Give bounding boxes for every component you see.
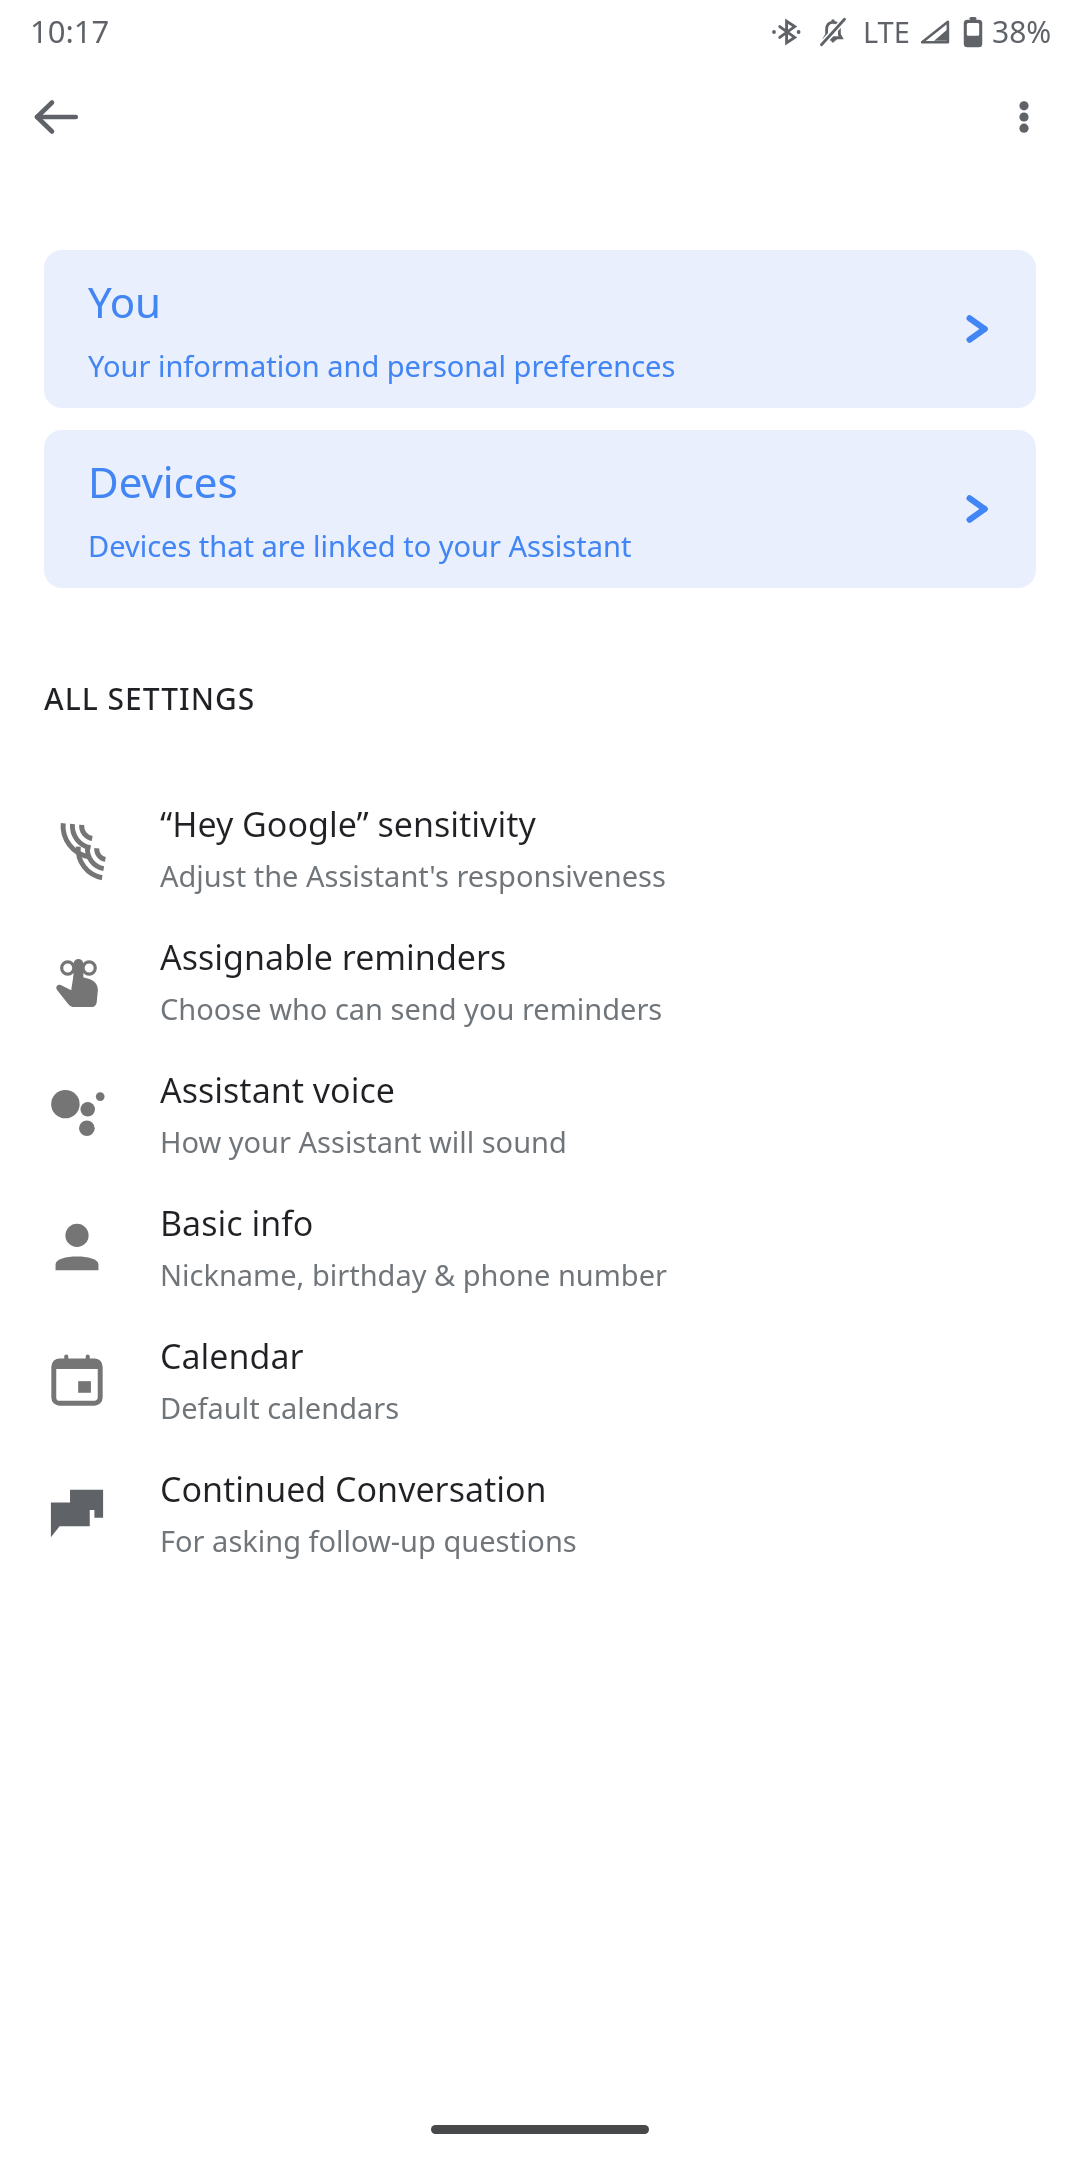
- staticText: For asking follow-up questions: [160, 1521, 577, 1560]
- staticText: Devices that are linked to your Assistan…: [88, 526, 632, 565]
- staticText: You: [88, 273, 162, 330]
- button[interactable]: Continued Conversation: [0, 1446, 1080, 1579]
- button[interactable]: Assignable reminders: [0, 914, 1080, 1047]
- button[interactable]: Assistant voice: [0, 1047, 1080, 1180]
- button[interactable]: “Hey Google” sensitivity: [0, 781, 1080, 914]
- staticText: Assistant voice: [160, 1067, 395, 1113]
- button[interactable]: Devices: [44, 430, 1036, 588]
- button[interactable]: Back: [18, 79, 94, 155]
- staticText: Adjust the Assistant's responsiveness: [160, 856, 666, 895]
- staticText: Devices: [88, 453, 238, 510]
- staticText: Nickname, birthday & phone number: [160, 1255, 668, 1294]
- staticText: Assignable reminders: [160, 934, 507, 980]
- staticText: ALL SETTINGS: [44, 678, 256, 719]
- staticText: “Hey Google” sensitivity: [160, 801, 536, 847]
- button[interactable]: Basic info: [0, 1180, 1080, 1313]
- staticText: Continued Conversation: [160, 1466, 547, 1512]
- staticText: Default calendars: [160, 1388, 400, 1427]
- button[interactable]: More options: [986, 79, 1062, 155]
- staticText: LTE: [863, 12, 910, 51]
- staticText: How your Assistant will sound: [160, 1122, 567, 1161]
- button[interactable]: Calendar: [0, 1313, 1080, 1446]
- staticText: 38%: [992, 11, 1052, 52]
- staticText: 10:17: [30, 10, 110, 52]
- staticText: Choose who can send you reminders: [160, 989, 663, 1028]
- staticText: Basic info: [160, 1200, 314, 1246]
- staticText: Your information and personal preference…: [88, 346, 676, 385]
- staticText: Calendar: [160, 1333, 304, 1379]
- button[interactable]: You: [44, 250, 1036, 408]
